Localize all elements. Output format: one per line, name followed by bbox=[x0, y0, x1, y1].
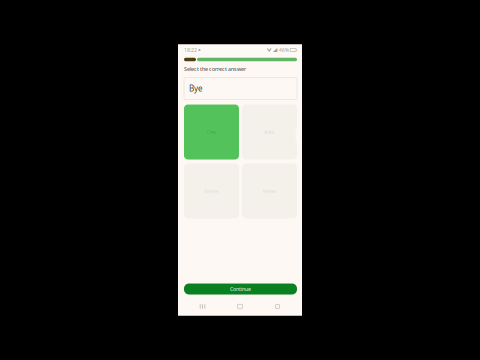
button[interactable]: Home bbox=[227, 299, 253, 313]
staticText: Bye bbox=[189, 83, 203, 94]
staticText: 18:22 bbox=[184, 46, 197, 54]
button[interactable]: Back bbox=[264, 299, 290, 313]
staticText: Continue bbox=[230, 285, 251, 293]
staticText: 46% bbox=[279, 46, 289, 54]
button[interactable]: Chau bbox=[184, 104, 239, 159]
staticText: Select the correct answer bbox=[184, 65, 246, 73]
button[interactable]: Continue bbox=[184, 283, 297, 294]
staticText: Adiós bbox=[264, 129, 274, 135]
staticText: Buenas bbox=[263, 188, 276, 194]
staticText: Chau bbox=[207, 129, 216, 135]
staticText: Gracias bbox=[204, 188, 218, 194]
button[interactable]: Recent apps bbox=[189, 299, 215, 313]
